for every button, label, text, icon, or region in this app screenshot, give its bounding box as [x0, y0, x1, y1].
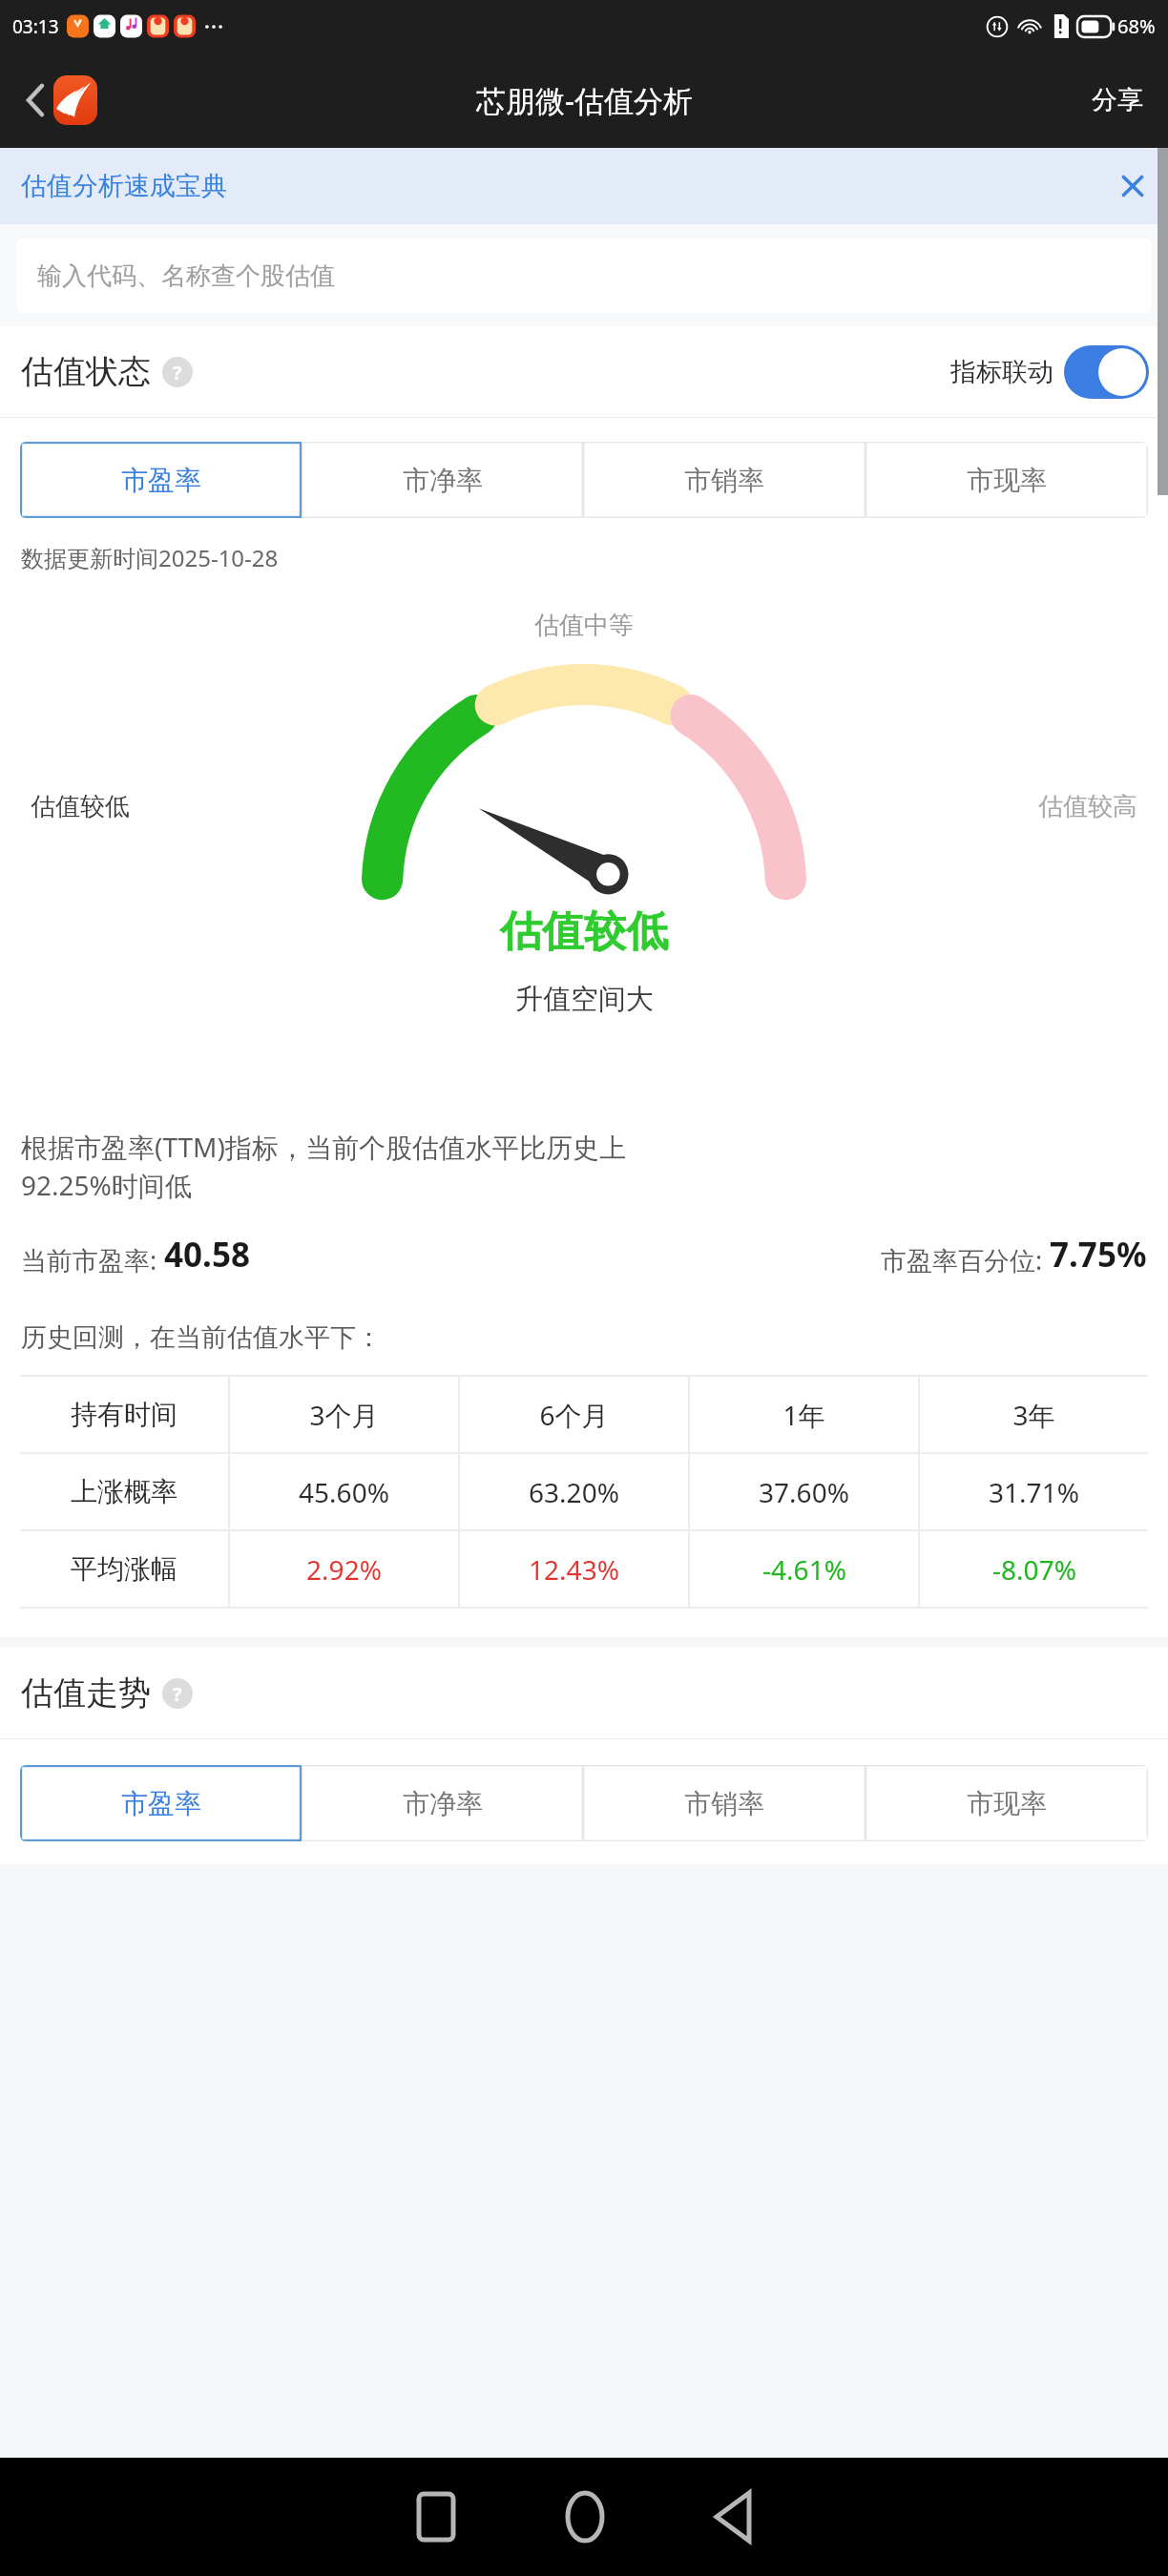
- staticText: -8.07%: [992, 1551, 1076, 1588]
- button[interactable]: Help: [162, 1678, 193, 1709]
- staticText: 市盈率: [121, 464, 201, 497]
- button[interactable]: Home: [511, 2476, 659, 2558]
- button[interactable]: 输入代码、名称查个股估值: [16, 239, 1152, 313]
- staticText: 市净率: [403, 464, 483, 497]
- staticText: 6个月: [539, 1397, 609, 1433]
- button[interactable]: 市现率: [866, 1765, 1148, 1841]
- staticText: 市现率: [967, 464, 1047, 497]
- staticText: 芯朋微-估值分析: [476, 80, 693, 120]
- button[interactable]: 市净率: [302, 442, 583, 518]
- button[interactable]: Back: [17, 76, 53, 124]
- staticText: 输入代码、名称查个股估值: [37, 260, 335, 292]
- staticText: 市净率: [403, 1787, 483, 1820]
- staticText: 估值较高: [1038, 791, 1137, 822]
- button[interactable]: 市销率: [583, 1765, 866, 1841]
- button[interactable]: 分享: [1067, 74, 1168, 126]
- staticText: 31.71%: [989, 1474, 1079, 1510]
- staticText: ?: [173, 360, 182, 385]
- staticText: 估值分析速成宝典: [21, 170, 227, 202]
- button[interactable]: Back: [659, 2476, 806, 2558]
- staticText: 40.58: [164, 1232, 250, 1278]
- staticText: 估值状态: [21, 351, 151, 392]
- staticText: -4.61%: [762, 1551, 846, 1588]
- staticText: 历史回测，在当前估值水平下：: [21, 1321, 382, 1354]
- staticText: 市销率: [684, 1787, 764, 1820]
- staticText: 根据市盈率(TTM)指标，当前个股估值水平比历史上 92.25%时间低: [21, 1129, 626, 1203]
- button[interactable]: Recents: [362, 2477, 511, 2557]
- staticText: 数据更新时间2025-10-28: [21, 542, 279, 573]
- staticText: 2.92%: [306, 1551, 382, 1588]
- staticText: 12.43%: [529, 1551, 619, 1588]
- button[interactable]: 指标联动: [950, 345, 1149, 399]
- staticText: 上涨概率: [71, 1475, 177, 1508]
- staticText: 7.75%: [1050, 1232, 1147, 1278]
- staticText: 市销率: [684, 464, 764, 497]
- staticText: 68%: [1117, 13, 1156, 39]
- staticText: 当前市盈率:: [21, 1242, 164, 1278]
- staticText: 平均涨幅: [71, 1552, 177, 1586]
- staticText: 市盈率百分位:: [881, 1242, 1050, 1278]
- staticText: 估值较低: [31, 791, 130, 822]
- button[interactable]: 市现率: [866, 442, 1148, 518]
- staticText: 63.20%: [529, 1474, 619, 1510]
- staticText: ?: [173, 1681, 182, 1707]
- button[interactable]: Help: [162, 357, 193, 387]
- staticText: 3年: [1012, 1397, 1055, 1433]
- button[interactable]: 市盈率: [20, 1765, 302, 1841]
- staticText: 3个月: [309, 1397, 379, 1433]
- staticText: 持有时间: [71, 1398, 177, 1431]
- staticText: 03:13: [12, 14, 59, 39]
- button[interactable]: 市盈率: [20, 442, 302, 518]
- staticText: 市盈率: [121, 1787, 201, 1820]
- staticText: 市现率: [967, 1787, 1047, 1820]
- staticText: 估值较低: [500, 905, 668, 958]
- button[interactable]: 市净率: [302, 1765, 583, 1841]
- button[interactable]: 市销率: [583, 442, 866, 518]
- staticText: 估值中等: [534, 610, 634, 641]
- staticText: 1年: [782, 1397, 825, 1433]
- button[interactable]: Close: [1097, 158, 1168, 214]
- staticText: 升值空间大: [515, 982, 654, 1017]
- staticText: 指标联动: [950, 356, 1053, 388]
- staticText: 45.60%: [299, 1474, 389, 1510]
- staticText: 分享: [1092, 84, 1143, 116]
- staticText: 37.60%: [759, 1474, 849, 1510]
- staticText: 估值走势: [21, 1672, 151, 1714]
